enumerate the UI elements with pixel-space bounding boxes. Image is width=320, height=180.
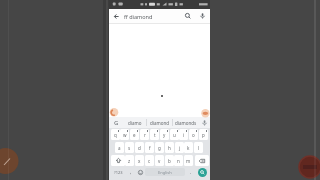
- staticText: G: [114, 119, 119, 127]
- button[interactable]: z: [125, 155, 134, 166]
- button[interactable]: c: [145, 155, 154, 166]
- button[interactable]: [195, 155, 209, 166]
- staticText: q: [114, 132, 117, 138]
- button[interactable]: [111, 155, 125, 166]
- staticText: n: [177, 158, 180, 164]
- button[interactable]: [111, 10, 121, 22]
- button[interactable]: English: [145, 168, 185, 176]
- button[interactable]: g: [155, 142, 164, 153]
- button[interactable]: p: [199, 129, 208, 140]
- staticText: h: [168, 145, 171, 151]
- staticText: English: [158, 170, 172, 175]
- button[interactable]: .: [186, 167, 195, 178]
- staticText: a: [118, 145, 121, 151]
- button[interactable]: [197, 10, 207, 22]
- staticText: i: [183, 132, 185, 138]
- button[interactable]: [136, 167, 145, 178]
- button[interactable]: r: [140, 129, 149, 140]
- button[interactable]: u: [170, 129, 179, 140]
- button[interactable]: i: [179, 129, 188, 140]
- button[interactable]: l: [194, 142, 203, 153]
- staticText: o: [192, 132, 195, 138]
- button[interactable]: w: [120, 129, 129, 140]
- staticText: t: [154, 132, 156, 138]
- staticText: d: [138, 145, 141, 151]
- button[interactable]: diamonds: [173, 117, 199, 128]
- button[interactable]: [200, 118, 209, 128]
- staticText: y: [163, 132, 166, 138]
- staticText: g: [158, 145, 161, 151]
- button[interactable]: d: [135, 142, 144, 153]
- button[interactable]: y: [160, 129, 169, 140]
- button[interactable]: f: [145, 142, 154, 153]
- staticText: ?123: [114, 170, 123, 175]
- staticText: c: [148, 158, 151, 164]
- button[interactable]: v: [155, 155, 164, 166]
- staticText: s: [128, 145, 131, 151]
- staticText: p: [202, 132, 205, 138]
- button[interactable]: m: [184, 155, 193, 166]
- button[interactable]: q: [111, 129, 120, 140]
- button[interactable]: n: [174, 155, 183, 166]
- button[interactable]: a: [115, 142, 124, 153]
- staticText: w: [123, 132, 127, 138]
- button[interactable]: o: [189, 129, 198, 140]
- button[interactable]: b: [165, 155, 174, 166]
- staticText: v: [158, 158, 161, 164]
- staticText: diamond: [150, 120, 169, 126]
- staticText: .: [190, 169, 192, 176]
- staticText: j: [179, 145, 181, 151]
- staticText: diamo: [128, 120, 142, 126]
- staticText: x: [138, 158, 141, 164]
- staticText: ff diamond: [124, 13, 153, 20]
- staticText: e: [133, 132, 136, 138]
- staticText: b: [168, 158, 171, 164]
- button[interactable]: s: [125, 142, 134, 153]
- button[interactable]: ?123: [111, 167, 125, 178]
- button[interactable]: [198, 168, 207, 177]
- staticText: diamonds: [175, 120, 197, 126]
- button[interactable]: diamond: [147, 117, 172, 128]
- button[interactable]: k: [184, 142, 193, 153]
- button[interactable]: x: [135, 155, 144, 166]
- button[interactable]: [183, 10, 192, 22]
- button[interactable]: j: [175, 142, 184, 153]
- staticText: m: [186, 158, 191, 164]
- button[interactable]: ,: [126, 167, 135, 178]
- staticText: l: [198, 145, 200, 151]
- staticText: f: [149, 145, 151, 151]
- button[interactable]: h: [165, 142, 174, 153]
- button[interactable]: t: [150, 129, 159, 140]
- staticText: z: [128, 158, 131, 164]
- staticText: u: [173, 132, 176, 138]
- button[interactable]: e: [130, 129, 139, 140]
- button[interactable]: diamo: [123, 117, 146, 128]
- staticText: r: [144, 132, 146, 138]
- staticText: ,: [130, 169, 132, 176]
- staticText: k: [187, 145, 190, 151]
